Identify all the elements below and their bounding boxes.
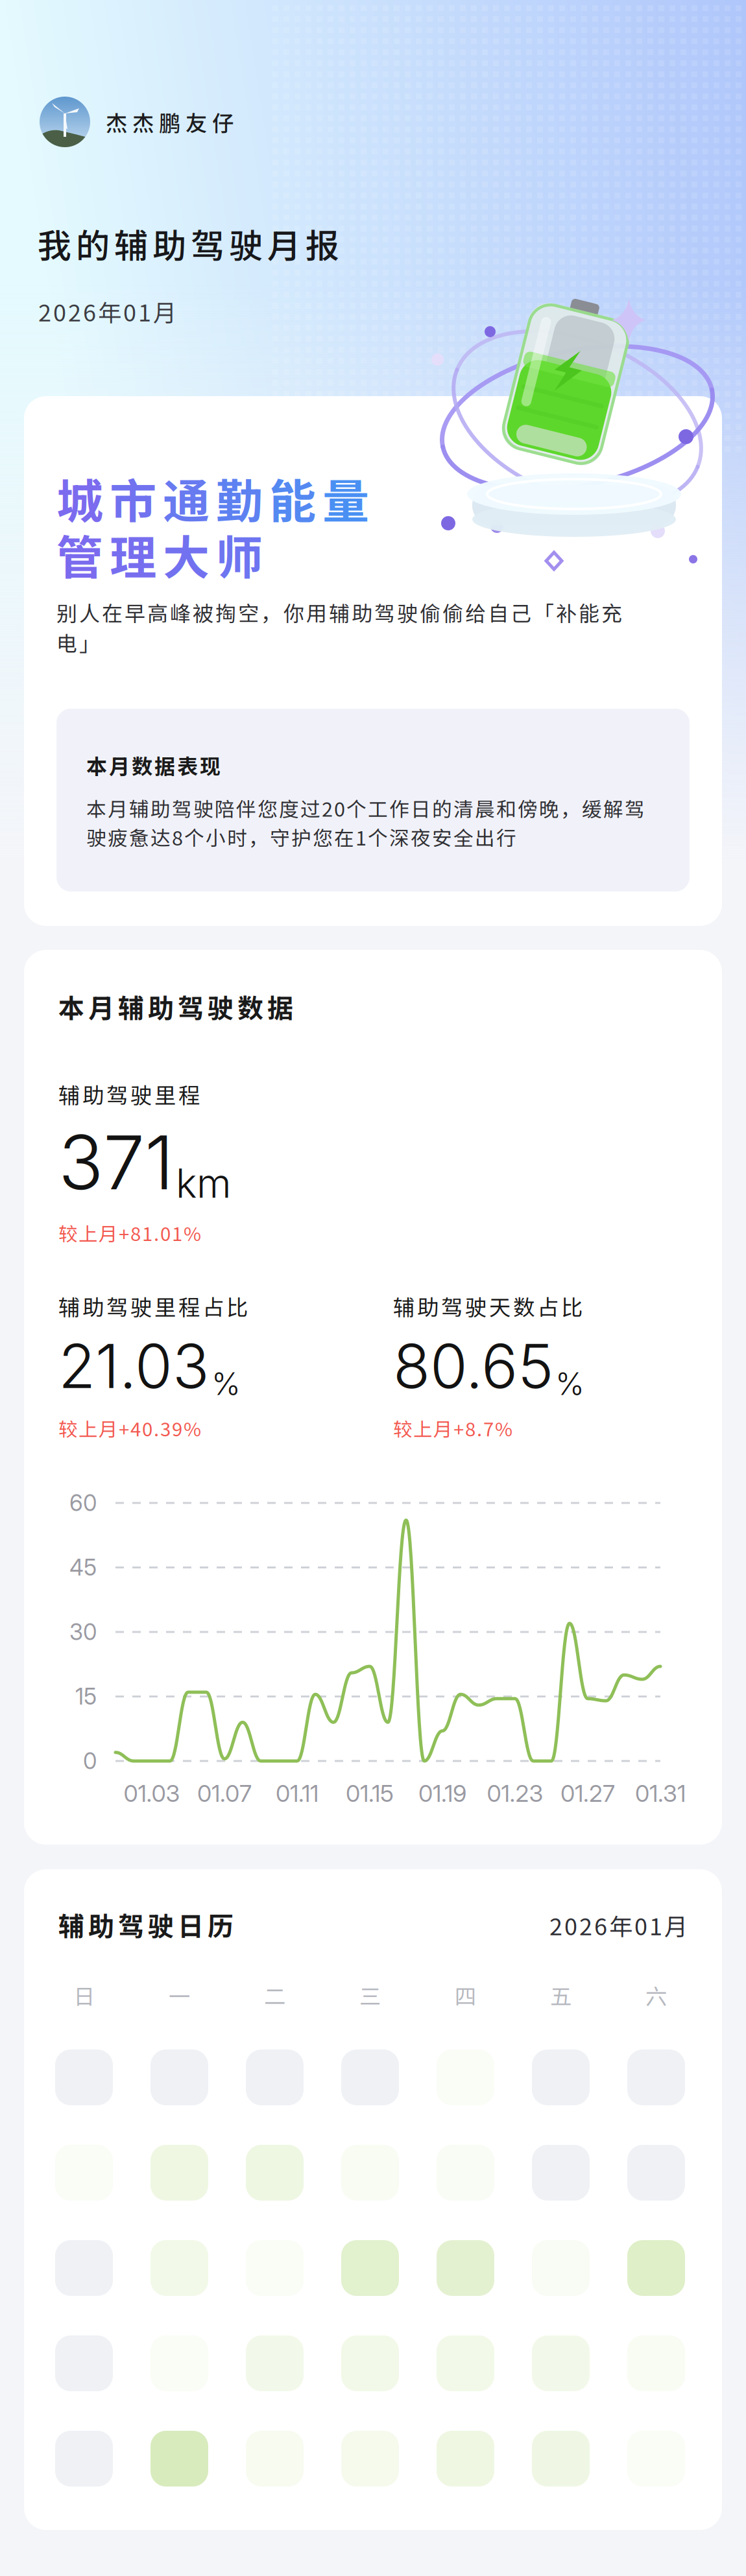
button[interactable]: 杰杰鹏友仔	[40, 97, 261, 147]
staticText: 45	[69, 1554, 97, 1581]
staticText: 01.11	[276, 1779, 319, 1808]
staticText: 15	[75, 1683, 97, 1710]
staticText: 30	[69, 1618, 97, 1646]
staticText: 2026年01月	[549, 1908, 688, 1942]
staticText: 勤	[216, 464, 263, 532]
staticText: 一	[169, 1979, 190, 2011]
staticText: 六	[645, 1979, 667, 2011]
staticText: 师	[216, 521, 263, 588]
staticText: 60	[69, 1489, 97, 1516]
staticText: 三	[359, 1979, 381, 2011]
staticText: 辅助驾驶天数占比	[393, 1290, 583, 1322]
staticText: 01.03	[124, 1779, 180, 1808]
staticText: 辅助驾驶里程	[58, 1078, 200, 1110]
staticText: 别人在早高峰被掏空，你用辅助驾驶偷偷给自己「补能充电」	[56, 597, 622, 657]
staticText: 城	[56, 464, 103, 532]
staticText: 01.07	[197, 1779, 252, 1808]
staticText: 80.65	[393, 1329, 553, 1403]
staticText: 辅助驾驶日历	[58, 1906, 234, 1943]
staticText: 较上月+8.7%	[393, 1414, 512, 1442]
staticText: 大	[163, 521, 210, 588]
staticText: 0	[83, 1747, 97, 1775]
staticText: 五	[550, 1979, 572, 2011]
staticText: 二	[264, 1979, 285, 2011]
staticText: 01.15	[346, 1779, 394, 1808]
staticText: 辅助驾驶里程占比	[58, 1290, 248, 1322]
staticText: 21.03	[58, 1329, 210, 1403]
staticText: 本月辅助驾驶数据	[58, 987, 293, 1025]
staticText: 本月数据表现	[86, 750, 221, 780]
staticText: 较上月+40.39%	[58, 1414, 201, 1442]
staticText: 通	[163, 464, 210, 532]
staticText: 能	[269, 464, 316, 532]
staticText: 量	[322, 464, 369, 532]
staticText: 2026年01月	[38, 294, 176, 328]
staticText: 市	[110, 464, 156, 532]
staticText: 本月辅助驾驶陪伴您度过20个工作日的清晨和傍晚，缓解驾驶疲惫达8个小时，守护您在…	[86, 794, 645, 851]
staticText: 较上月+81.01%	[58, 1219, 201, 1247]
staticText: 371	[58, 1117, 174, 1207]
staticText: %	[555, 1365, 584, 1403]
staticText: 管	[56, 521, 103, 588]
staticText: 杰杰鹏友仔	[106, 106, 234, 138]
staticText: km	[176, 1159, 232, 1207]
staticText: 理	[110, 521, 156, 588]
staticText: 日	[73, 1979, 95, 2011]
staticText: 四	[455, 1979, 476, 2011]
staticText: 01.19	[418, 1779, 466, 1808]
staticText: %	[211, 1365, 241, 1403]
staticText: 01.23	[487, 1779, 543, 1808]
staticText: 我的辅助驾驶月报	[38, 219, 339, 268]
staticText: 01.31	[635, 1779, 686, 1808]
staticText: 01.27	[560, 1779, 615, 1808]
